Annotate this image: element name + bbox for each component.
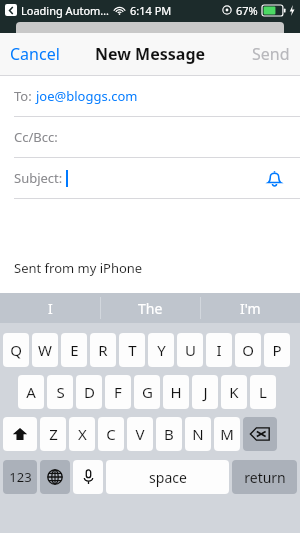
staticText: To: (14, 87, 36, 105)
button[interactable]: I (0, 293, 100, 323)
staticText: Cc/Bcc: (14, 128, 58, 146)
staticText: 67% (236, 3, 258, 18)
staticText: 123 (9, 468, 32, 486)
staticText: T (128, 340, 137, 360)
button[interactable]: I (206, 333, 232, 367)
staticText: D (84, 382, 95, 402)
button[interactable]: Cc/Bcc: (0, 117, 300, 157)
button[interactable]: O (235, 333, 261, 367)
staticText: N (192, 424, 204, 444)
staticText: space (149, 468, 187, 487)
staticText: Cancel (10, 43, 60, 65)
button[interactable]: S (47, 375, 73, 409)
button[interactable]: To: (0, 76, 300, 116)
button[interactable]: G (134, 375, 160, 409)
staticText: Send (252, 43, 290, 65)
staticText: Q (10, 340, 22, 360)
staticText: Z (49, 424, 58, 444)
button[interactable]: B (156, 417, 182, 451)
staticText: K (229, 382, 239, 402)
staticText: joe@bloggs.com (36, 87, 138, 105)
button[interactable]: U (177, 333, 203, 367)
button[interactable]: J (192, 375, 218, 409)
staticText: P (272, 340, 282, 360)
staticText: W (38, 340, 52, 360)
button[interactable]: The (101, 293, 200, 323)
staticText: Y (157, 340, 166, 360)
button[interactable]: Subject: (0, 158, 300, 198)
staticText: U (185, 340, 196, 360)
staticText: Sent from my iPhone (14, 259, 143, 277)
staticText: J (203, 382, 208, 402)
button[interactable]: L (250, 375, 276, 409)
button[interactable]: I'm (201, 293, 300, 323)
button[interactable]: T (119, 333, 145, 367)
button[interactable]: Change keyboard (40, 460, 70, 494)
button[interactable]: Z (40, 417, 66, 451)
staticText: I (216, 340, 222, 360)
staticText: Subject: (14, 169, 66, 187)
button[interactable]: V (127, 417, 153, 451)
staticText: G (142, 382, 153, 402)
button[interactable]: H (163, 375, 189, 409)
button[interactable]: W (32, 333, 58, 367)
button[interactable]: F (105, 375, 131, 409)
staticText: R (98, 340, 108, 360)
staticText: B (164, 424, 174, 444)
staticText: S (56, 382, 65, 402)
button[interactable]: Dictate (73, 460, 103, 494)
staticText: H (170, 382, 182, 402)
staticText: C (106, 424, 116, 444)
button[interactable]: A (18, 375, 44, 409)
button[interactable]: Q (3, 333, 29, 367)
button[interactable]: M (214, 417, 240, 451)
button[interactable]: Y (148, 333, 174, 367)
button[interactable]: Notify me (260, 164, 288, 192)
staticText: F (114, 382, 122, 402)
button[interactable]: Cancel (10, 33, 60, 75)
staticText: M (220, 424, 234, 444)
button[interactable]: X (69, 417, 95, 451)
staticText: V (135, 424, 145, 444)
staticText: return (244, 468, 286, 487)
button[interactable]: return (232, 460, 297, 494)
staticText: O (242, 340, 254, 360)
button[interactable]: space (106, 460, 229, 494)
button[interactable]: D (76, 375, 102, 409)
button[interactable]: E (61, 333, 87, 367)
button[interactable]: P (264, 333, 290, 367)
staticText: The (138, 299, 163, 318)
staticText: I'm (240, 299, 261, 318)
button[interactable]: K (221, 375, 247, 409)
button[interactable]: Shift (3, 417, 37, 451)
staticText: E (70, 340, 79, 360)
button[interactable]: N (185, 417, 211, 451)
button[interactable]: 123 (3, 460, 37, 494)
button[interactable]: Backspace (243, 417, 277, 451)
staticText: Loading Autom… (21, 3, 110, 18)
staticText: X (78, 424, 87, 444)
staticText: A (26, 382, 36, 402)
button[interactable]: R (90, 333, 116, 367)
staticText: L (259, 382, 267, 402)
button[interactable]: Send (252, 33, 290, 75)
button[interactable]: Sent from my iPhone (0, 199, 300, 293)
button[interactable]: C (98, 417, 124, 451)
staticText: New Message (95, 43, 206, 65)
staticText: I (48, 299, 53, 318)
staticText: 6:14 PM (130, 3, 172, 18)
